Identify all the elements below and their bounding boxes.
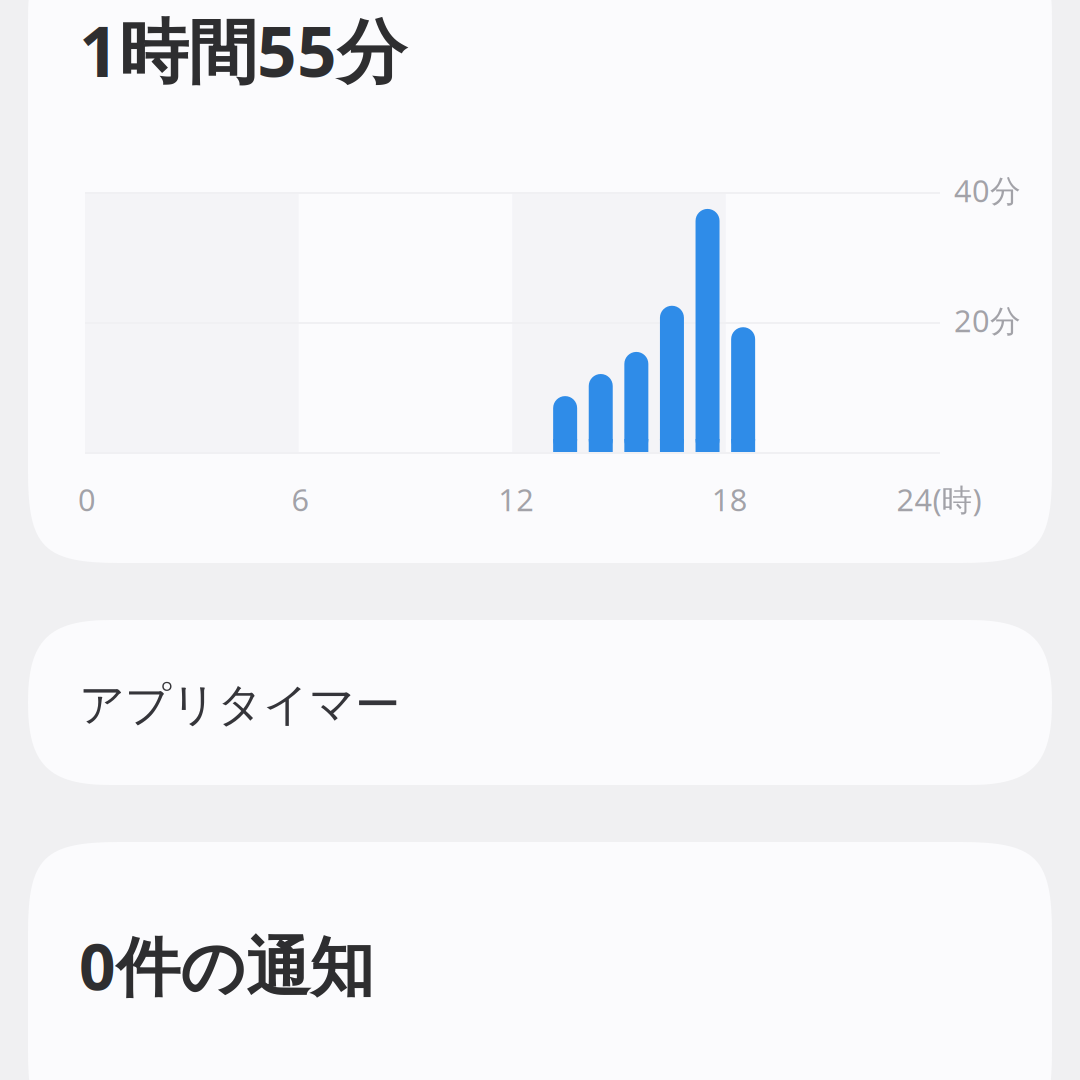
staticText: 18 (712, 479, 748, 520)
staticText: 20分 (954, 300, 1021, 341)
staticText: 0件の通知 (79, 923, 374, 1008)
staticText: 12 (498, 479, 534, 520)
staticText: 24(時) (896, 479, 981, 520)
staticText: アプリタイマー (79, 677, 400, 733)
staticText: 0 (78, 479, 96, 520)
button[interactable]: 0件の通知 (28, 842, 1052, 1080)
staticText: 6 (292, 479, 310, 520)
staticText: 1時間55分 (79, 4, 406, 96)
staticText: 40分 (954, 170, 1021, 211)
button[interactable]: アプリタイマー (28, 620, 1052, 785)
button[interactable]: 1時間55分 (28, 0, 1052, 563)
